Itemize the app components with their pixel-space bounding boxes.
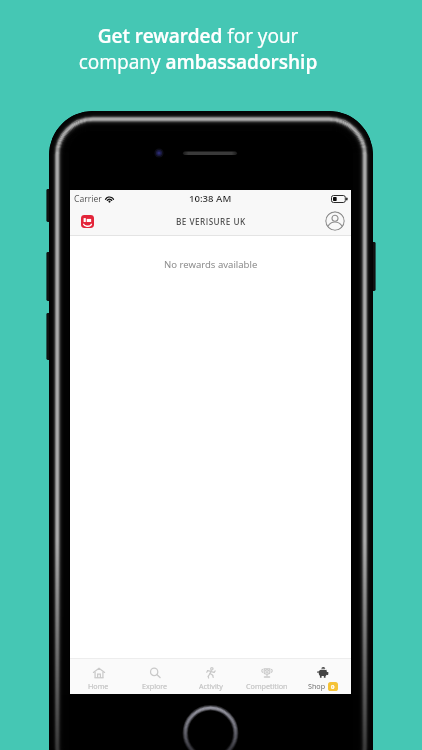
staticText: Explore	[142, 681, 168, 691]
staticText: Shop	[308, 681, 326, 691]
button[interactable]: Account	[325, 211, 345, 231]
button[interactable]: Competition	[239, 659, 295, 694]
staticText: BE VERISURE UK	[176, 216, 246, 227]
staticText: Competition	[246, 681, 288, 691]
staticText: 0	[331, 683, 335, 691]
button[interactable]: Explore	[127, 659, 183, 694]
staticText: 10:38 AM	[189, 192, 232, 205]
button[interactable]: Be logo	[81, 215, 94, 228]
staticText: Activity	[199, 681, 223, 691]
button[interactable]: Home	[70, 659, 127, 694]
staticText: Carrier	[74, 193, 102, 205]
button[interactable]: Shop	[295, 659, 351, 694]
staticText: Get rewarded for your company ambassador…	[0, 23, 409, 75]
staticText: Home	[88, 681, 109, 691]
staticText: No rewards available	[164, 258, 258, 271]
button[interactable]: Activity	[183, 659, 239, 694]
